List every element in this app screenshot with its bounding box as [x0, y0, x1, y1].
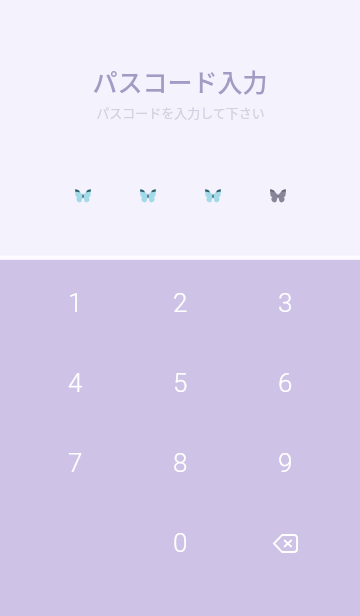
button[interactable]: 2: [140, 271, 220, 335]
staticText: 9: [278, 448, 293, 478]
button[interactable]: Backspace: [245, 511, 325, 575]
button[interactable]: 3: [245, 271, 325, 335]
button[interactable]: 8: [140, 431, 220, 495]
staticText: 7: [68, 448, 83, 478]
staticText: 2: [173, 288, 188, 318]
button[interactable]: 4: [35, 351, 115, 415]
staticText: 5: [173, 368, 188, 398]
staticText: 4: [68, 368, 83, 398]
staticText: 6: [278, 368, 293, 398]
button[interactable]: 9: [245, 431, 325, 495]
button[interactable]: 1: [35, 271, 115, 335]
button[interactable]: 5: [140, 351, 220, 415]
staticText: 0: [173, 528, 188, 558]
staticText: 8: [173, 448, 188, 478]
staticText: 3: [278, 288, 293, 318]
button[interactable]: 0: [140, 511, 220, 575]
staticText: パスコードを入力して下さい: [96, 103, 265, 122]
staticText: パスコード入力: [92, 63, 268, 99]
staticText: 1: [68, 288, 83, 318]
button[interactable]: 6: [245, 351, 325, 415]
button[interactable]: 7: [35, 431, 115, 495]
